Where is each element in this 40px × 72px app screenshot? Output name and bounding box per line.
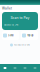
button[interactable]: Send: [2, 31, 19, 40]
staticText: Send: [8, 34, 13, 37]
staticText: No activity yet: [14, 43, 30, 46]
button[interactable]: Home: [0, 64, 10, 72]
staticText: Scan to Pay: [10, 16, 29, 20]
button[interactable]: More: [30, 64, 40, 72]
button[interactable]: Stats: [20, 64, 30, 72]
staticText: Balance $1,248: [4, 24, 18, 26]
button[interactable]: Scan to Pay: [0, 12, 40, 30]
button[interactable]: Top up: [21, 31, 38, 40]
staticText: Wallet: [2, 7, 12, 10]
staticText: Top up: [27, 34, 33, 37]
button[interactable]: No activity yet: [0, 42, 40, 48]
button[interactable]: Cards: [10, 64, 20, 72]
